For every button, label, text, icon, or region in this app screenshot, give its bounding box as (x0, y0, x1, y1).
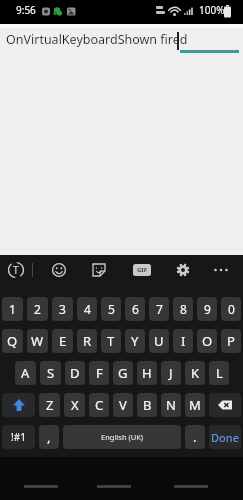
button[interactable]: Y (125, 329, 145, 353)
button[interactable]: 7 (149, 297, 169, 321)
button[interactable]: !#1 (2, 425, 35, 449)
button[interactable]: K (185, 361, 205, 385)
button[interactable]: 5 (101, 297, 121, 321)
button[interactable]: 9 (197, 297, 217, 321)
button[interactable] (209, 393, 241, 417)
button[interactable] (2, 393, 35, 417)
staticText: !#1 (11, 430, 26, 444)
button[interactable]: 6 (125, 297, 145, 321)
button[interactable]: Z (39, 393, 60, 417)
staticText: G (118, 364, 128, 382)
staticText: 9:56 (16, 3, 36, 17)
staticText: 8 (180, 301, 187, 317)
button[interactable]: 2 (27, 297, 48, 321)
button[interactable]: L (209, 361, 229, 385)
staticText: J (169, 364, 173, 382)
button[interactable]: J (161, 361, 181, 385)
staticText: Done (211, 430, 239, 445)
staticText: , (47, 428, 51, 446)
staticText: 3 (59, 301, 66, 317)
button[interactable]: 3 (52, 297, 73, 321)
staticText: 7 (156, 301, 163, 317)
button[interactable]: M (185, 393, 205, 417)
staticText: K (191, 364, 200, 382)
staticText: 5 (108, 301, 115, 317)
staticText: 6 (132, 301, 139, 317)
staticText: H (142, 364, 152, 382)
staticText: T (13, 263, 19, 277)
staticText: S (47, 364, 55, 382)
staticText: . (193, 428, 197, 446)
button[interactable]: P (221, 329, 241, 353)
button[interactable]: C (89, 393, 109, 417)
staticText: X (71, 396, 79, 414)
button[interactable] (213, 267, 229, 273)
button[interactable]: 4 (77, 297, 97, 321)
button[interactable] (176, 263, 190, 277)
button[interactable]: GIF (133, 264, 151, 276)
button[interactable]: Done (209, 425, 241, 449)
button[interactable]: W (27, 329, 48, 353)
staticText: O (202, 332, 213, 350)
staticText: Q (7, 332, 18, 350)
staticText: Y (131, 332, 139, 350)
button[interactable]: O (197, 329, 217, 353)
staticText: F (96, 364, 103, 382)
button[interactable]: I (173, 329, 193, 353)
button[interactable]: 0 (221, 297, 241, 321)
staticText: V (119, 396, 127, 414)
button[interactable]: OnVirtualKeyboardShown fired (0, 28, 243, 255)
staticText: English (UK) (101, 432, 144, 442)
staticText: U (154, 332, 164, 350)
button[interactable]: V (113, 393, 133, 417)
button[interactable]: R (77, 329, 97, 353)
staticText: T (107, 332, 115, 350)
button[interactable]: 1 (2, 297, 23, 321)
staticText: 2 (34, 301, 41, 317)
button[interactable]: F (89, 361, 109, 385)
staticText: L (216, 364, 223, 382)
staticText: I (181, 332, 186, 350)
staticText: E (59, 332, 67, 350)
staticText: R (83, 332, 92, 350)
staticText: 0 (228, 301, 235, 317)
button[interactable]: B (137, 393, 157, 417)
button[interactable]: English (UK) (63, 425, 181, 449)
button[interactable]: T (6, 260, 26, 280)
staticText: 1 (9, 301, 16, 317)
button[interactable]: U (149, 329, 169, 353)
staticText: A (21, 364, 30, 382)
staticText: GIF (137, 266, 147, 274)
button[interactable]: . (185, 425, 205, 449)
staticText: W (31, 332, 44, 350)
button[interactable]: D (65, 361, 85, 385)
staticText: C (95, 396, 104, 414)
button[interactable]: G (113, 361, 133, 385)
staticText: OnVirtualKeyboardShown fired (6, 31, 188, 48)
staticText: 4 (84, 301, 91, 317)
button[interactable]: A (15, 361, 36, 385)
staticText: D (70, 364, 80, 382)
staticText: M (189, 396, 201, 414)
staticText: P (227, 332, 235, 350)
button[interactable]: N (161, 393, 181, 417)
staticText: 100% (199, 3, 225, 17)
staticText: B (143, 396, 152, 414)
button[interactable]: X (64, 393, 85, 417)
button[interactable]: T (101, 329, 121, 353)
button[interactable] (92, 263, 106, 277)
staticText: N (166, 396, 176, 414)
button[interactable]: S (40, 361, 61, 385)
button[interactable]: E (52, 329, 73, 353)
button[interactable]: 8 (173, 297, 193, 321)
button[interactable]: , (39, 425, 59, 449)
button[interactable]: H (137, 361, 157, 385)
button[interactable] (52, 263, 66, 277)
staticText: Z (46, 396, 54, 414)
button[interactable]: Q (2, 329, 23, 353)
staticText: 9 (204, 301, 211, 317)
